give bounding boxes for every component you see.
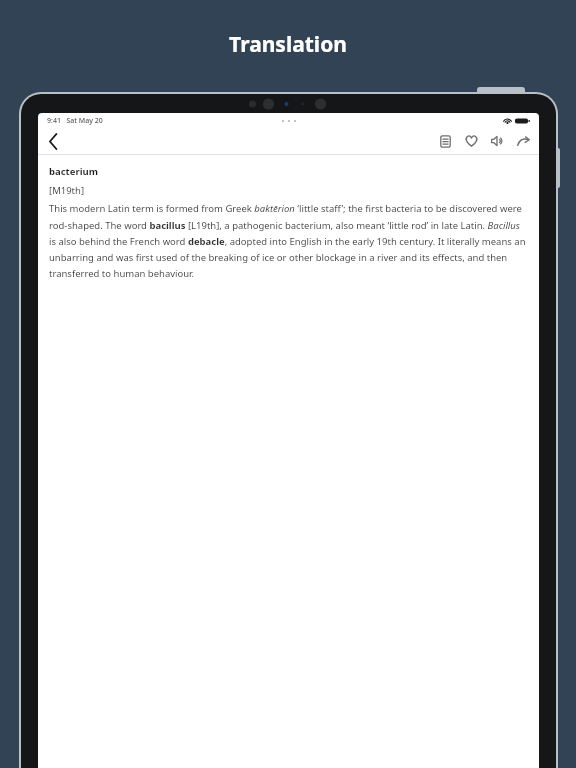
button[interactable]: Share — [512, 130, 534, 152]
staticText: 9:41 Sat May 20 — [47, 116, 103, 126]
button[interactable]: Notes — [434, 130, 456, 152]
button[interactable]: Pronounce — [486, 130, 508, 152]
staticText: [M19th] — [49, 184, 85, 197]
button[interactable]: Favourite — [460, 130, 482, 152]
staticText: bacterium — [49, 165, 98, 178]
staticText: Translation — [229, 30, 347, 59]
button[interactable]: Back — [42, 130, 64, 152]
staticText: This modern Latin term is formed from Gr… — [49, 202, 528, 279]
